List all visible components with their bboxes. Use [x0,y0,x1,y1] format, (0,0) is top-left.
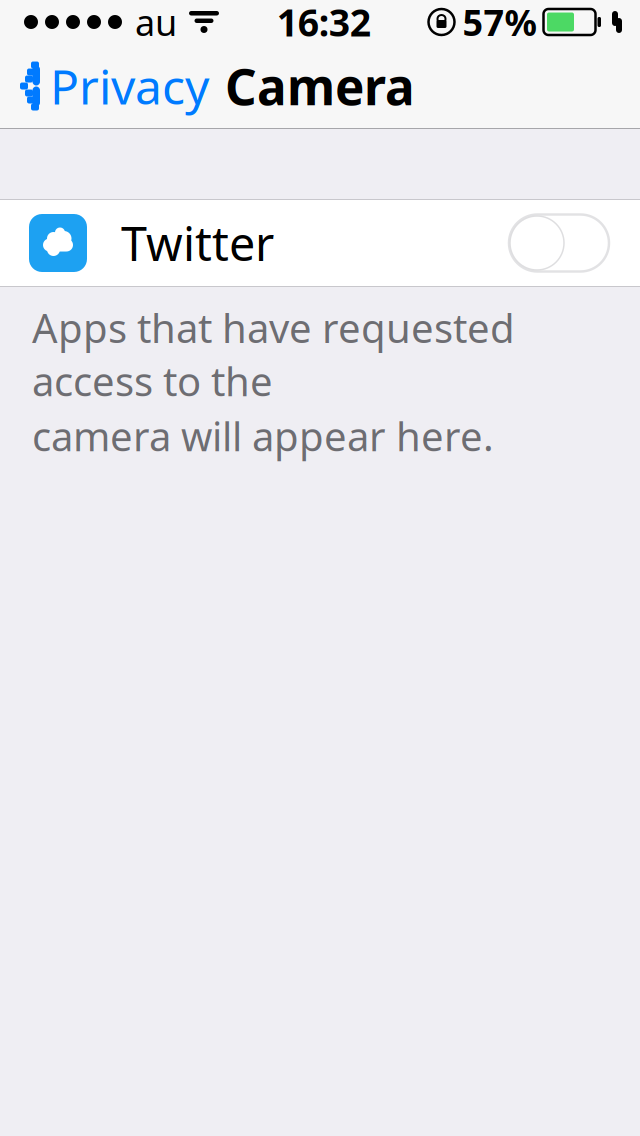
staticText: camera will appear here. [32,409,494,462]
staticText: Privacy [50,54,209,118]
staticText: Twitter [121,212,274,274]
staticText: 57% [462,0,536,46]
staticText: Apps that have requested access to the [32,301,515,407]
staticText: Camera [225,53,415,119]
button[interactable]: Twitter [0,200,640,286]
button[interactable]: Privacy [0,44,223,128]
staticText: au [135,0,177,46]
staticText: 16:32 [277,0,371,47]
